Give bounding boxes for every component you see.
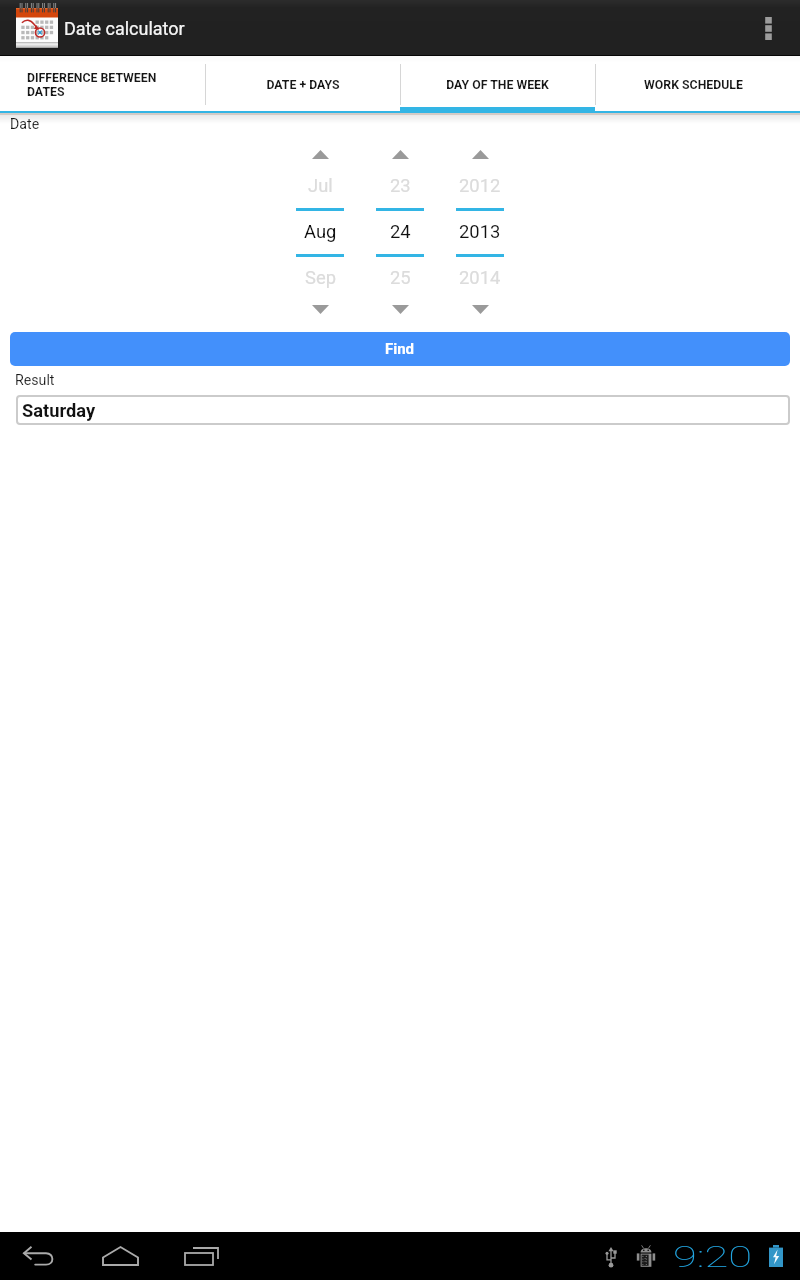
staticText: Result — [15, 372, 55, 389]
staticText: Find — [385, 340, 415, 358]
staticText: 23 — [390, 175, 411, 197]
staticText: DATE + DAYS — [266, 78, 340, 92]
staticText: Date calculator — [64, 18, 185, 39]
staticText: 9:20 — [673, 1239, 753, 1274]
staticText: WORK SCHEDULE — [644, 78, 743, 92]
button[interactable]: DATE + DAYS — [205, 56, 400, 113]
staticText: Sep — [305, 267, 336, 289]
staticText: 24 — [390, 221, 411, 243]
button[interactable]: Increase year — [440, 141, 520, 167]
button[interactable]: Find — [10, 332, 790, 366]
staticText: 2014 — [459, 267, 501, 289]
button[interactable]: Back — [8, 1232, 72, 1280]
staticText: Saturday — [22, 400, 96, 421]
staticText: Aug — [304, 221, 337, 243]
button[interactable]: Increase month — [280, 141, 360, 167]
staticText: Date — [10, 116, 40, 133]
button[interactable]: WORK SCHEDULE — [595, 56, 792, 113]
button[interactable]: Decrease year — [440, 296, 520, 322]
button[interactable]: More options — [740, 0, 796, 56]
button[interactable]: Decrease month — [280, 296, 360, 322]
button[interactable]: Saturday — [16, 395, 790, 425]
staticText: 2013 — [459, 221, 501, 243]
staticText: DIFFERENCE BETWEEN DATES — [27, 71, 165, 99]
staticText: DAY OF THE WEEK — [446, 78, 549, 92]
button[interactable]: Decrease day — [360, 296, 440, 322]
button[interactable]: Recent apps — [169, 1232, 233, 1280]
staticText: 2012 — [459, 175, 501, 197]
button[interactable]: DAY OF THE WEEK — [400, 56, 595, 113]
button[interactable]: Increase day — [360, 141, 440, 167]
button[interactable]: DIFFERENCE BETWEEN DATES — [0, 56, 205, 113]
button[interactable]: Home — [88, 1232, 152, 1280]
staticText: 25 — [390, 267, 411, 289]
staticText: Jul — [308, 175, 333, 197]
